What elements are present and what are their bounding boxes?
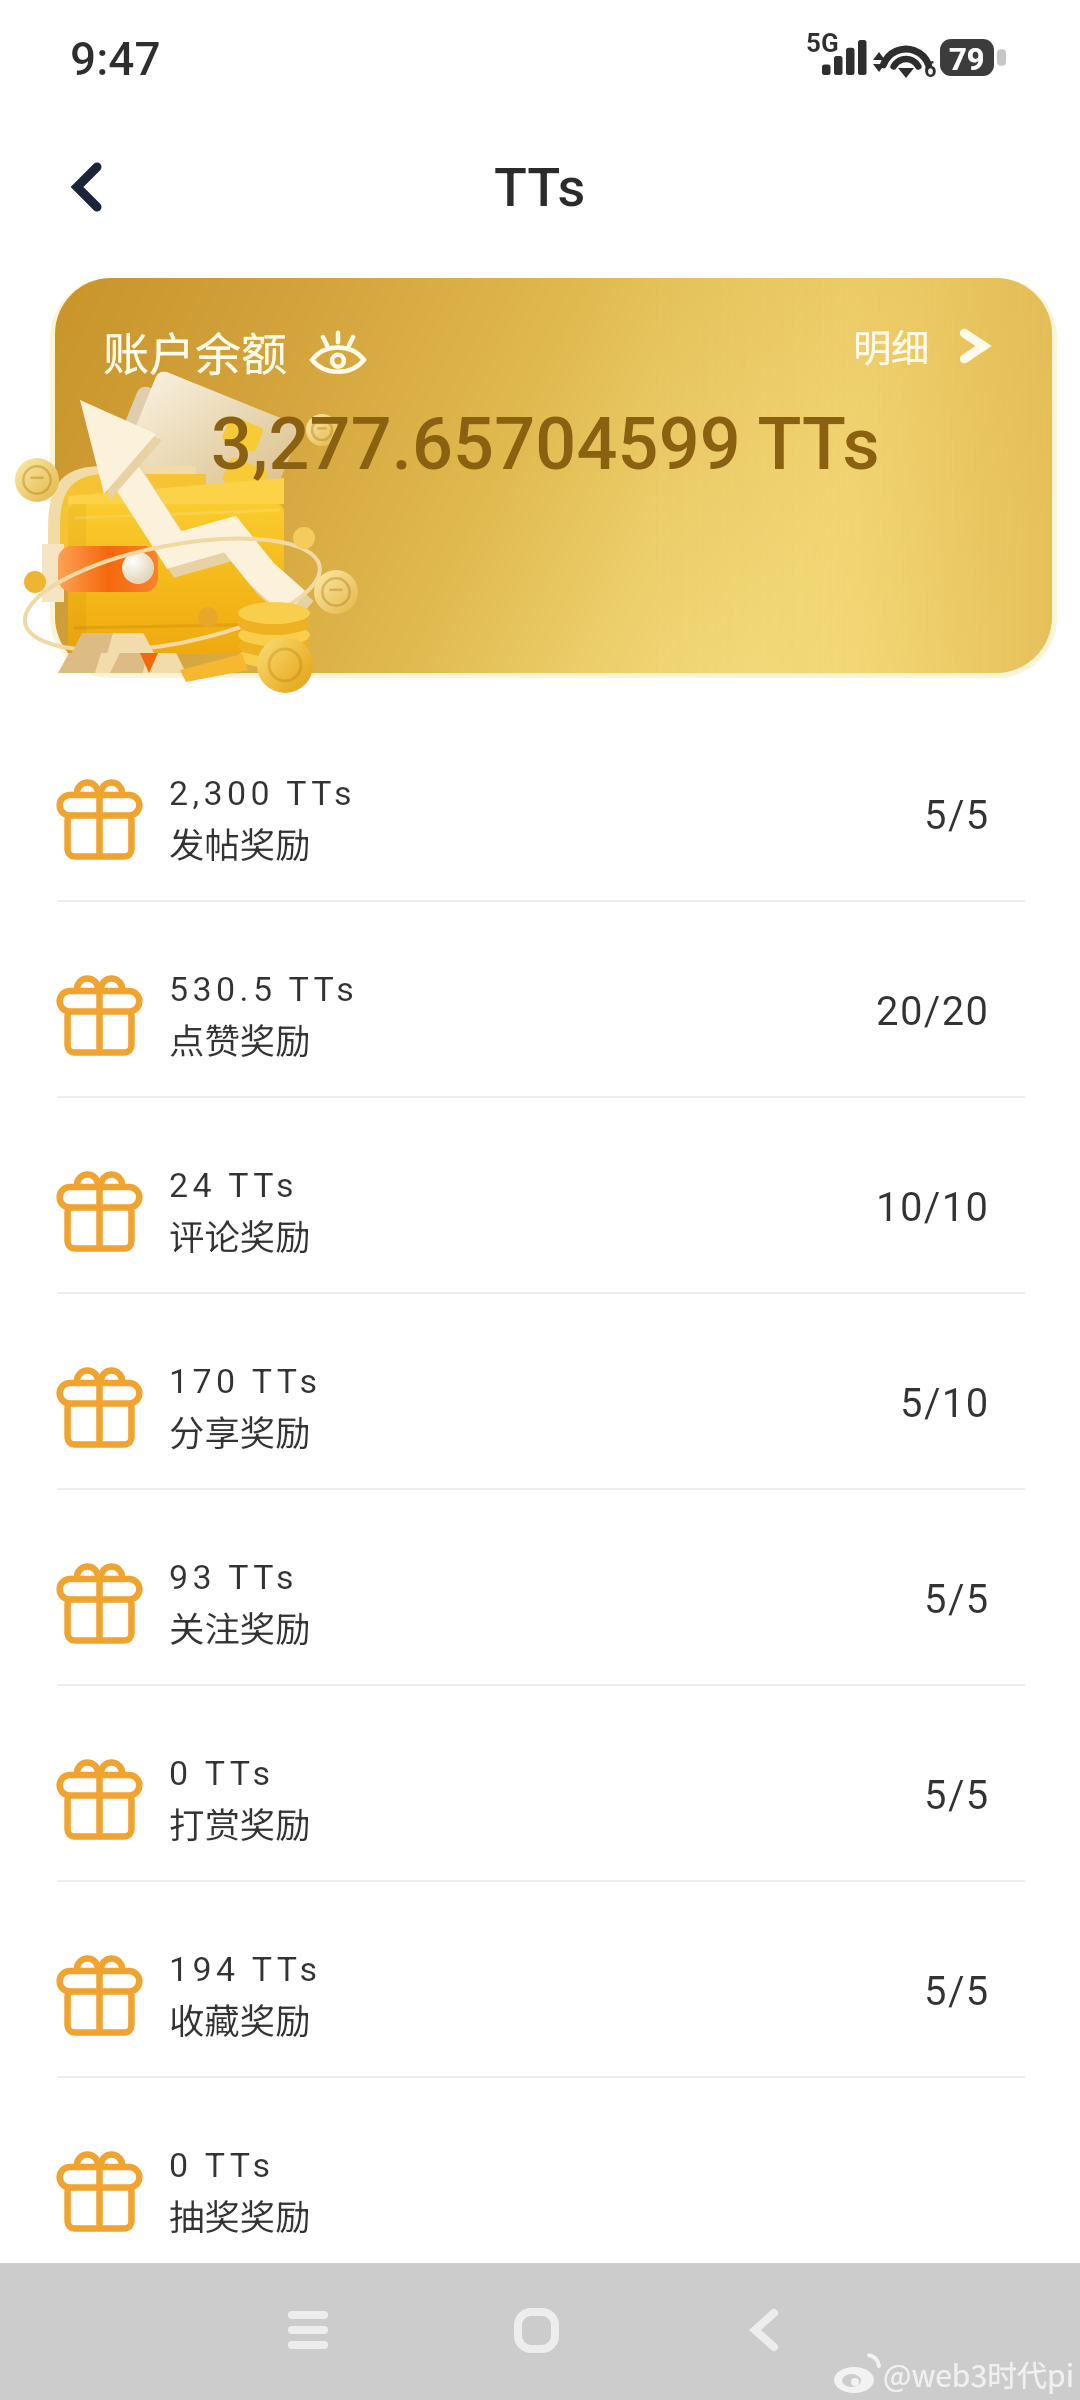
staticText: 93 TTs	[169, 1557, 298, 1597]
staticText: 194 TTs	[169, 1949, 322, 1989]
button[interactable]: 170 TTs	[0, 1294, 1080, 1488]
staticText: 20/20	[876, 988, 990, 1035]
button[interactable]: 2,300 TTs	[0, 706, 1080, 900]
staticText: 账户余额	[103, 318, 287, 385]
staticText: 点赞奖励	[169, 1013, 311, 1064]
staticText: @web3时代pi	[883, 2352, 1074, 2395]
staticText: TTs	[494, 156, 586, 219]
staticText: 0 TTs	[169, 2145, 275, 2185]
button[interactable]: 0 TTs	[0, 2078, 1080, 2272]
staticText: 发帖奖励	[169, 817, 311, 868]
button[interactable]: Back	[37, 137, 137, 237]
staticText: 5/5	[924, 1576, 990, 1623]
staticText: 24 TTs	[169, 1165, 298, 1205]
staticText: 分享奖励	[169, 1405, 311, 1456]
button[interactable]: 0 TTs	[0, 1686, 1080, 1880]
button[interactable]: Home	[466, 2280, 606, 2380]
staticText: 打赏奖励	[169, 1797, 311, 1848]
button[interactable]: 账户余额	[55, 278, 1052, 673]
button[interactable]: 明细	[853, 318, 986, 373]
button[interactable]: 24 TTs	[0, 1098, 1080, 1292]
staticText: 收藏奖励	[169, 1993, 311, 2044]
staticText: 10/10	[876, 1184, 990, 1231]
button[interactable]: Back	[694, 2280, 834, 2380]
staticText: 关注奖励	[169, 1601, 311, 1652]
button[interactable]: 530.5 TTs	[0, 902, 1080, 1096]
staticText: 5/5	[924, 1968, 990, 2015]
staticText: 3,277.65704599 TTs	[211, 402, 880, 486]
staticText: 5/5	[924, 1772, 990, 1819]
staticText: 530.5 TTs	[169, 969, 359, 1009]
staticText: 5G	[806, 28, 839, 58]
staticText: 明细	[853, 318, 930, 373]
button[interactable]: 194 TTs	[0, 1882, 1080, 2076]
staticText: 9:47	[70, 32, 161, 86]
staticText: 评论奖励	[169, 1209, 311, 1260]
staticText: 5/5	[924, 792, 990, 839]
staticText: 170 TTs	[169, 1361, 322, 1401]
staticText: 5/10	[900, 1380, 990, 1427]
button[interactable]: 93 TTs	[0, 1490, 1080, 1684]
staticText: 79	[949, 41, 985, 77]
staticText: 6	[924, 57, 937, 83]
staticText: 0 TTs	[169, 1753, 275, 1793]
staticText: 2,300 TTs	[169, 773, 356, 813]
button[interactable]: Recent apps	[238, 2280, 378, 2380]
staticText: 抽奖奖励	[169, 2189, 311, 2240]
